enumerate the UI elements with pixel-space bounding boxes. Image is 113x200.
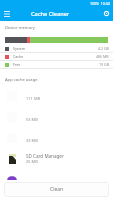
- staticText: 25 MB: [26, 159, 38, 164]
- staticText: Cache: [13, 54, 24, 59]
- staticText: 33 MB: [26, 138, 38, 143]
- staticText: Cache Cleaner: [31, 10, 70, 18]
- button[interactable]: Free: [0, 61, 113, 69]
- button[interactable]: Settings: [99, 6, 113, 21]
- button[interactable]: System: [0, 45, 113, 53]
- staticText: 100% 10:34: [90, 1, 110, 6]
- staticText: 53 MB: [26, 117, 38, 122]
- button[interactable]: Menu: [0, 6, 14, 21]
- staticText: App cache usage: [5, 77, 38, 83]
- staticText: Free: [13, 62, 21, 67]
- staticText: 4.2 GB: [98, 46, 109, 51]
- staticText: Device memory: [5, 25, 35, 31]
- button[interactable]: 33 MB: [0, 127, 113, 148]
- button[interactable]: 53 MB: [0, 106, 113, 127]
- staticText: 19 GB: [99, 62, 109, 67]
- button[interactable]: Cache: [0, 53, 113, 61]
- staticText: Clean: [50, 186, 64, 193]
- button[interactable]: 111 MB: [0, 85, 113, 106]
- button[interactable]: Clean: [4, 182, 109, 197]
- button[interactable]: SD Card Manager: [0, 148, 113, 169]
- staticText: System: [13, 46, 26, 51]
- staticText: SD Card Manager: [26, 153, 64, 159]
- button[interactable]: [0, 169, 113, 190]
- staticText: 111 MB: [26, 96, 41, 101]
- staticText: 486 MB: [96, 54, 109, 59]
